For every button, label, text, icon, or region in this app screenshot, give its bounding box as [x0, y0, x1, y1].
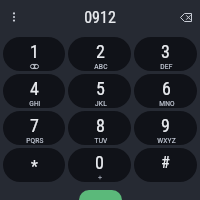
staticText: 8: [96, 115, 105, 136]
button[interactable]: 1: [3, 37, 65, 71]
staticText: 0912: [84, 8, 116, 27]
staticText: 9: [161, 115, 170, 136]
button[interactable]: Backspace: [175, 6, 197, 28]
staticText: DEF: [160, 63, 173, 71]
button[interactable]: 0: [68, 148, 131, 182]
staticText: MNO: [159, 100, 175, 108]
button[interactable]: 2: [68, 37, 131, 71]
staticText: 1: [30, 41, 39, 62]
button[interactable]: 3: [134, 37, 197, 71]
staticText: 2: [96, 41, 105, 62]
staticText: PQRS: [26, 137, 44, 145]
staticText: JKL: [95, 100, 107, 108]
staticText: 0: [95, 152, 104, 173]
staticText: 6: [162, 78, 171, 99]
button[interactable]: Call: [79, 190, 122, 200]
button[interactable]: #: [134, 148, 197, 182]
staticText: 7: [30, 115, 39, 136]
button[interactable]: 7: [3, 111, 65, 145]
staticText: WXYZ: [157, 137, 176, 145]
button[interactable]: 5: [68, 74, 131, 108]
staticText: 4: [30, 78, 39, 99]
staticText: GHI: [29, 100, 41, 108]
staticText: ABC: [94, 63, 108, 71]
staticText: 3: [161, 41, 170, 62]
staticText: #: [161, 153, 170, 172]
staticText: 5: [96, 78, 105, 99]
button[interactable]: 8: [68, 111, 131, 145]
button[interactable]: 4: [3, 74, 65, 108]
staticText: *: [31, 157, 38, 176]
button[interactable]: 9: [134, 111, 197, 145]
staticText: TUV: [94, 137, 108, 145]
button[interactable]: More options: [3, 6, 25, 28]
button[interactable]: 6: [134, 74, 197, 108]
button[interactable]: *: [3, 148, 65, 182]
